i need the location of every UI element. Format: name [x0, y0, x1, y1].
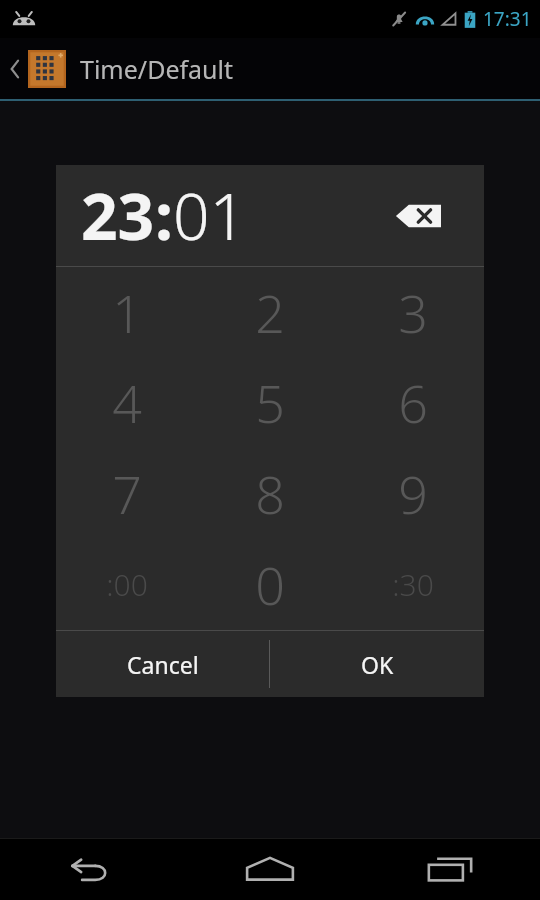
staticText: 9	[398, 458, 428, 529]
staticText: 8	[255, 458, 285, 529]
other: Navigate up	[8, 56, 22, 82]
button[interactable]: :00	[56, 539, 198, 630]
staticText: :30	[392, 564, 434, 605]
button[interactable]: 8	[198, 448, 341, 539]
button[interactable]: 4	[56, 357, 198, 448]
staticText: OK	[361, 649, 394, 680]
staticText: 3	[398, 277, 428, 348]
button[interactable]: 7	[56, 448, 198, 539]
staticText: 4	[112, 367, 142, 438]
staticText: 01	[173, 172, 247, 259]
button[interactable]: Navigate up	[0, 38, 540, 99]
staticText: 2	[255, 277, 285, 348]
staticText: 5	[255, 367, 285, 438]
staticText: 17:31	[483, 6, 532, 32]
staticText: 23	[81, 172, 155, 259]
staticText: 0	[255, 549, 285, 620]
button[interactable]: 1	[56, 267, 198, 357]
button[interactable]: 9	[341, 448, 484, 539]
button[interactable]: 5	[198, 357, 341, 448]
button[interactable]: Home	[180, 838, 360, 900]
staticText: Cancel	[127, 649, 199, 680]
button[interactable]: 0	[198, 539, 341, 630]
button[interactable]: 6	[341, 357, 484, 448]
button[interactable]: Recent apps	[360, 838, 540, 900]
staticText: 1	[112, 277, 142, 348]
staticText: :	[155, 172, 173, 259]
staticText: Time/Default	[80, 52, 234, 86]
button[interactable]: OK	[270, 631, 484, 697]
button[interactable]: 3	[341, 267, 484, 357]
button[interactable]: Back	[0, 838, 180, 900]
button[interactable]: Cancel	[56, 631, 269, 697]
button[interactable]: 2	[198, 267, 341, 357]
staticText: :00	[106, 564, 148, 605]
staticText: 7	[112, 458, 142, 529]
button[interactable]: Backspace	[386, 184, 450, 248]
staticText: 6	[398, 367, 428, 438]
